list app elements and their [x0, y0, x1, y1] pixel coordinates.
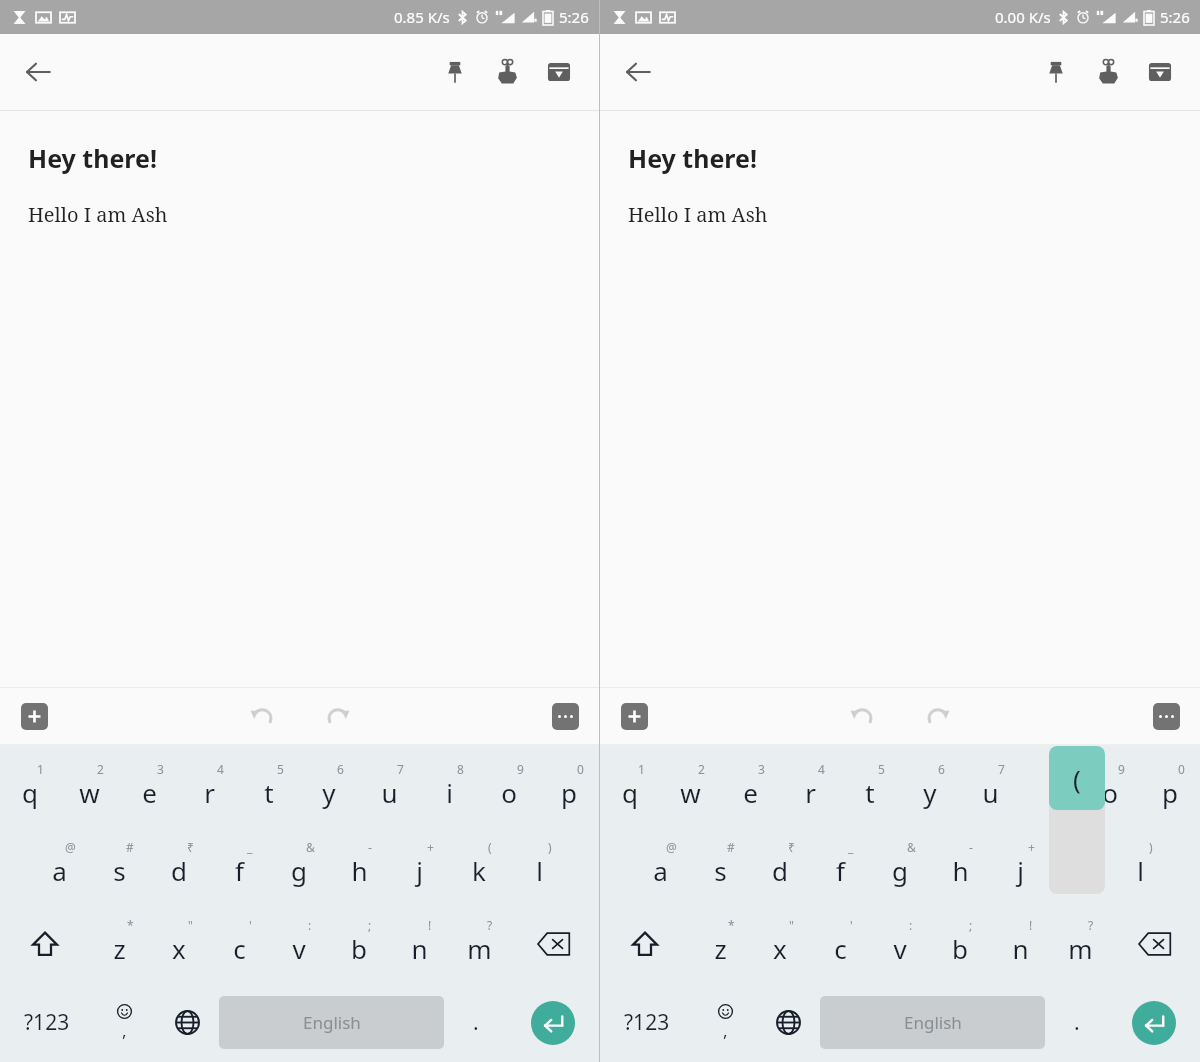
button[interactable]: Change language [156, 983, 219, 1062]
button[interactable]: English [219, 996, 444, 1049]
button[interactable]: Emoji [693, 983, 757, 1062]
button[interactable]: Redo [317, 695, 359, 737]
button[interactable]: @ [630, 827, 690, 905]
button[interactable]: Shift [600, 905, 690, 983]
button[interactable]: 1 [0, 749, 59, 827]
button[interactable]: 3 [720, 749, 780, 827]
button[interactable]: ' [810, 905, 870, 983]
button[interactable]: Pin [429, 46, 481, 98]
staticText: p [1162, 775, 1178, 810]
button[interactable]: - [329, 827, 389, 905]
button[interactable]: 1 [600, 749, 660, 827]
button[interactable]: # [89, 827, 149, 905]
button[interactable]: Add [614, 696, 654, 736]
button[interactable]: # [690, 827, 750, 905]
button[interactable]: . [1045, 983, 1108, 1062]
button[interactable]: Undo [241, 695, 283, 737]
staticText: 6 [938, 761, 945, 777]
button[interactable]: 7 [960, 749, 1020, 827]
button[interactable]: Shift [0, 905, 89, 983]
button[interactable]: @ [29, 827, 89, 905]
button[interactable]: ' [209, 905, 269, 983]
button[interactable]: Backspace [509, 905, 599, 983]
button[interactable]: 5 [840, 749, 900, 827]
button[interactable]: 2 [660, 749, 720, 827]
button[interactable]: Back [14, 48, 62, 96]
staticText: t [865, 775, 875, 810]
staticText: 9 [1118, 761, 1125, 777]
button[interactable]: ₹ [149, 827, 209, 905]
button[interactable]: ) [1110, 827, 1170, 905]
button[interactable]: ? [1050, 905, 1110, 983]
button[interactable]: More options [1146, 696, 1186, 736]
staticText: . [473, 1008, 479, 1037]
staticText: q [22, 775, 38, 810]
button[interactable]: 9 [479, 749, 539, 827]
button[interactable]: 4 [780, 749, 840, 827]
button[interactable]: " [750, 905, 810, 983]
button[interactable]: Reminder [481, 46, 533, 98]
button[interactable]: 5 [239, 749, 299, 827]
button[interactable]: 6 [299, 749, 359, 827]
button[interactable]: Undo [841, 695, 883, 737]
button[interactable]: 0 [1140, 749, 1200, 827]
button[interactable]: 3 [119, 749, 179, 827]
button[interactable]: 7 [359, 749, 419, 827]
staticText: t [264, 775, 274, 810]
button[interactable]: : [870, 905, 930, 983]
button[interactable]: 4 [179, 749, 239, 827]
button[interactable]: ; [930, 905, 990, 983]
staticText: s [113, 853, 126, 888]
button[interactable]: Pin [1030, 46, 1082, 98]
staticText: ' [249, 917, 252, 933]
button[interactable]: * [690, 905, 750, 983]
button[interactable]: * [89, 905, 149, 983]
button[interactable]: More options [545, 696, 585, 736]
button[interactable]: ; [329, 905, 389, 983]
button[interactable]: 8 [419, 749, 479, 827]
staticText: i [1047, 775, 1054, 810]
button[interactable]: Enter [1108, 983, 1200, 1062]
button[interactable]: + [990, 827, 1050, 905]
staticText: u [982, 775, 999, 810]
button[interactable]: 0 [539, 749, 599, 827]
button[interactable]: 6 [900, 749, 960, 827]
button[interactable]: 9 [1080, 749, 1140, 827]
button[interactable]: : [269, 905, 329, 983]
button[interactable]: Back [614, 48, 662, 96]
button[interactable]: ( [1050, 827, 1110, 905]
button[interactable]: + [389, 827, 449, 905]
button[interactable]: _ [810, 827, 870, 905]
button[interactable]: . [444, 983, 507, 1062]
button[interactable]: ! [990, 905, 1050, 983]
button[interactable]: & [269, 827, 329, 905]
button[interactable]: ! [389, 905, 449, 983]
staticText: English [303, 1011, 361, 1034]
button[interactable]: ?123 [0, 983, 93, 1062]
button[interactable]: Enter [507, 983, 599, 1062]
button[interactable]: Emoji [93, 983, 156, 1062]
button[interactable]: Archive [1134, 46, 1186, 98]
button[interactable]: Add [14, 696, 54, 736]
button[interactable]: ) [509, 827, 569, 905]
button[interactable]: ₹ [750, 827, 810, 905]
staticText: ?123 [624, 1008, 670, 1037]
staticText: b [351, 931, 367, 966]
button[interactable]: & [870, 827, 930, 905]
button[interactable]: _ [209, 827, 269, 905]
button[interactable]: Archive [533, 46, 585, 98]
button[interactable]: ( [449, 827, 509, 905]
button[interactable]: ?123 [600, 983, 693, 1062]
button[interactable]: English [820, 996, 1045, 1049]
button[interactable]: Change language [757, 983, 820, 1062]
button[interactable]: 8 [1020, 749, 1080, 827]
staticText: j [1017, 853, 1024, 888]
button[interactable]: 2 [59, 749, 119, 827]
button[interactable]: Backspace [1110, 905, 1200, 983]
staticText: 2 [698, 761, 705, 777]
button[interactable]: Redo [917, 695, 959, 737]
button[interactable]: Reminder [1082, 46, 1134, 98]
button[interactable]: ? [449, 905, 509, 983]
button[interactable]: - [930, 827, 990, 905]
button[interactable]: " [149, 905, 209, 983]
